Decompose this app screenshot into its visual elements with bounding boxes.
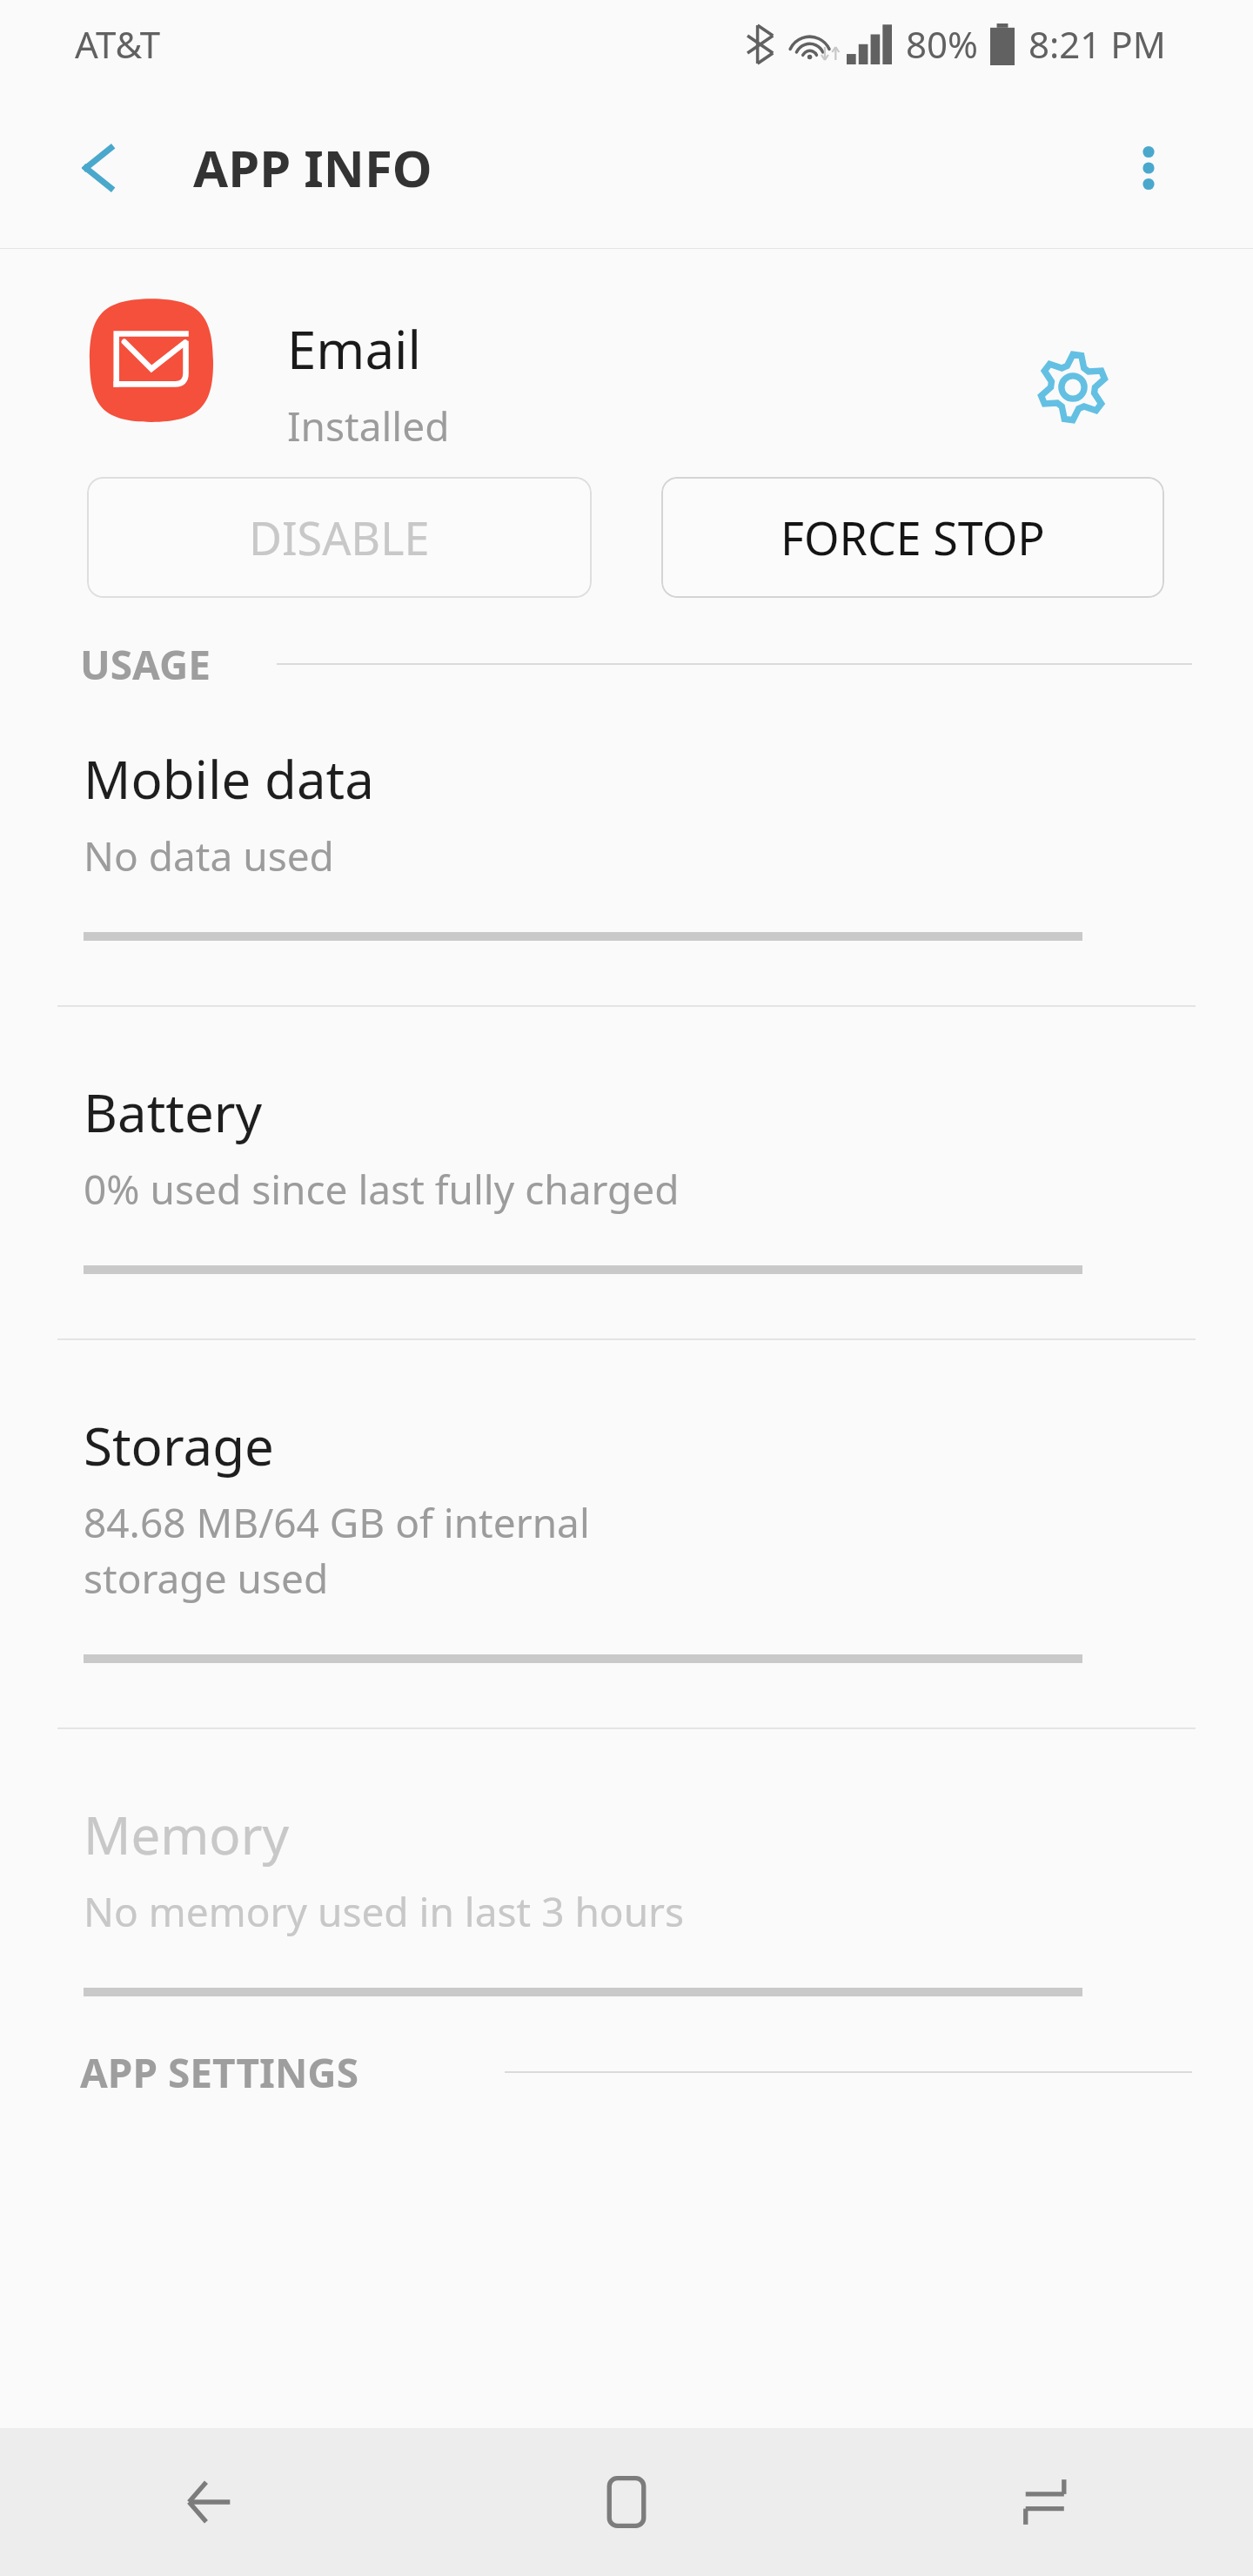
staticText: Installed	[287, 399, 450, 453]
button[interactable]: Recents	[835, 2428, 1253, 2576]
button[interactable]: Mobile data	[0, 743, 1253, 1077]
button[interactable]: Battery	[0, 1077, 1253, 1410]
button[interactable]: Storage	[0, 1410, 1253, 1799]
button[interactable]: FORCE STOP	[661, 477, 1164, 598]
staticText: APP INFO	[193, 133, 432, 202]
staticText: 0% used since last fully charged	[84, 1162, 680, 1217]
staticText: No data used	[84, 828, 334, 883]
staticText: Email	[287, 313, 422, 385]
staticText: Battery	[84, 1077, 263, 1148]
staticText: DISABLE	[249, 506, 430, 568]
staticText: 80%	[906, 19, 978, 69]
button[interactable]: Memory	[0, 1799, 1253, 1996]
button[interactable]: App settings	[1037, 352, 1109, 423]
staticText: APP SETTINGS	[80, 2045, 358, 2099]
button[interactable]: DISABLE	[87, 477, 592, 598]
staticText: 8:21 PM	[1029, 19, 1166, 69]
button[interactable]: Home	[418, 2428, 835, 2576]
staticText: USAGE	[80, 637, 211, 691]
staticText: No memory used in last 3 hours	[84, 1884, 685, 1939]
staticText: FORCE STOP	[781, 506, 1045, 568]
button[interactable]: Back	[0, 2428, 418, 2576]
staticText: Storage	[84, 1410, 274, 1481]
button[interactable]: Navigate up	[57, 126, 141, 210]
button[interactable]: More options	[1110, 130, 1187, 206]
staticText: Mobile data	[84, 743, 374, 815]
staticText: AT&T	[75, 19, 160, 69]
staticText: 84.68 MB/64 GB of internal storage used	[84, 1495, 590, 1606]
staticText: Memory	[84, 1799, 290, 1870]
